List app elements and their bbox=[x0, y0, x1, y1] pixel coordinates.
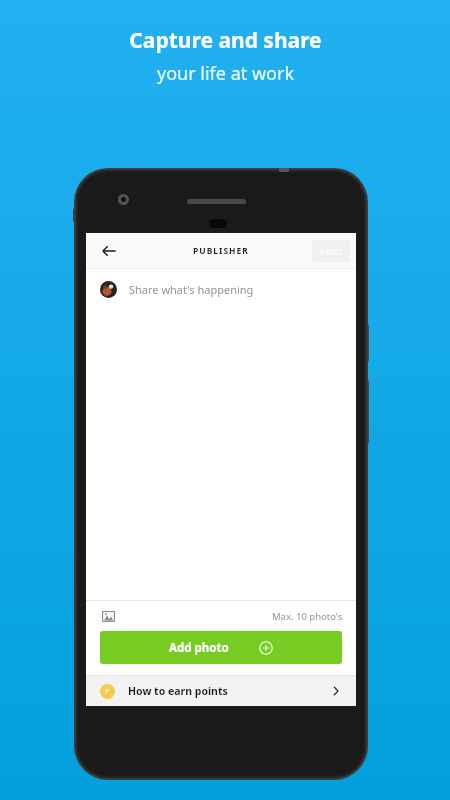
staticText: PUBLISHER bbox=[193, 245, 249, 257]
button[interactable]: P bbox=[86, 676, 356, 706]
button[interactable]: Back bbox=[94, 236, 124, 266]
button[interactable]: Share what's happening bbox=[100, 281, 356, 298]
staticText: Capture and share bbox=[129, 26, 322, 55]
staticText: POST bbox=[320, 245, 343, 257]
button[interactable]: Add image bbox=[99, 607, 117, 625]
staticText: your life at work bbox=[157, 61, 294, 86]
button[interactable]: Add photo bbox=[100, 631, 342, 664]
staticText: P bbox=[105, 687, 110, 697]
staticText: Add photo bbox=[169, 640, 229, 656]
staticText: Max. 10 photo's bbox=[272, 610, 343, 623]
staticText: Share what's happening bbox=[129, 282, 254, 297]
staticText: How to earn points bbox=[128, 684, 228, 698]
